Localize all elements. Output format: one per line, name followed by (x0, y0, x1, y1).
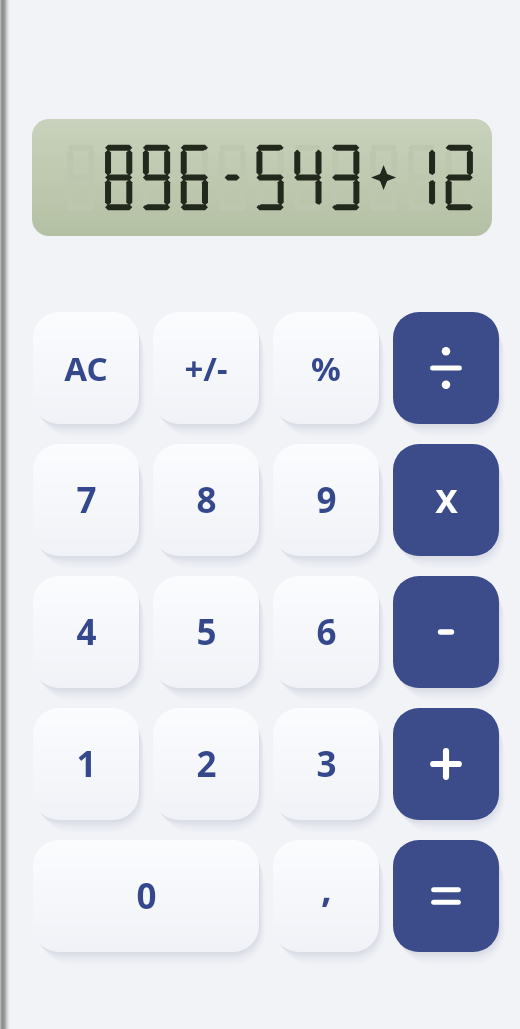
staticText: X (435, 478, 458, 523)
button[interactable]: , (273, 840, 379, 952)
button[interactable]: Add (393, 708, 499, 820)
staticText: 4 (76, 608, 97, 656)
staticText: +/- (184, 346, 228, 391)
button[interactable]: 1 (33, 708, 139, 820)
button[interactable]: 6 (273, 576, 379, 688)
staticText: 0 (136, 872, 157, 920)
button[interactable]: % (273, 312, 379, 424)
button[interactable]: 2 (153, 708, 259, 820)
staticText: 1 (76, 740, 97, 788)
button[interactable]: 0 (33, 840, 259, 952)
button[interactable]: Multiply (393, 444, 499, 556)
staticText: 7 (76, 476, 97, 524)
staticText: 8 (196, 476, 217, 524)
staticText: 3 (316, 740, 337, 788)
button[interactable]: AC (33, 312, 139, 424)
button[interactable]: 9 (273, 444, 379, 556)
button[interactable]: 7 (33, 444, 139, 556)
staticText: 9 (316, 476, 337, 524)
button[interactable]: 3 (273, 708, 379, 820)
button[interactable]: 5 (153, 576, 259, 688)
staticText: , (321, 861, 332, 913)
button[interactable]: +/- (153, 312, 259, 424)
button[interactable]: 4 (33, 576, 139, 688)
staticText: % (311, 346, 341, 391)
button[interactable]: 8 (153, 444, 259, 556)
staticText: 2 (196, 740, 217, 788)
button[interactable]: Equals (393, 840, 499, 952)
staticText: 5 (196, 608, 217, 656)
button[interactable]: Divide (393, 312, 499, 424)
button[interactable]: Subtract (393, 576, 499, 688)
staticText: 6 (316, 608, 337, 656)
staticText: AC (64, 346, 108, 391)
